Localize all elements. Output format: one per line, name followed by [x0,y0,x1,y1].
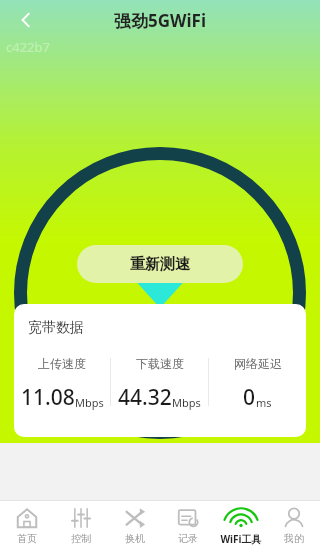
staticText: 我的 [284,532,304,545]
button[interactable]: 首页 [0,501,54,552]
staticText: 控制 [71,532,91,545]
staticText: 网络延迟 [234,356,282,371]
button[interactable]: 宽带数据 [14,304,306,437]
staticText: 0 [243,383,256,412]
staticText: Mbps [172,395,201,410]
staticText: Mbps [75,395,104,410]
button[interactable]: Back [6,0,46,40]
button[interactable]: 记录 [161,501,214,552]
staticText: 上传速度 [38,356,86,371]
button[interactable]: 我的 [267,501,320,552]
button[interactable]: 换机 [108,501,161,552]
button[interactable]: 控制 [54,501,108,552]
staticText: 下载速度 [136,356,184,371]
staticText: 强劲5GWiFi [114,9,206,32]
staticText: 11.08 [21,383,75,412]
staticText: c422b7 [6,38,50,56]
button[interactable]: WiFi工具 [214,501,267,552]
button[interactable]: 重新测速 [77,245,243,283]
staticText: 44.32 [118,383,172,412]
staticText: 首页 [17,532,37,545]
staticText: 换机 [125,532,145,545]
staticText: WiFi工具 [220,532,262,546]
staticText: ms [256,395,272,410]
staticText: 宽带数据 [28,319,84,337]
staticText: 重新测速 [130,255,190,274]
staticText: 记录 [178,532,198,545]
